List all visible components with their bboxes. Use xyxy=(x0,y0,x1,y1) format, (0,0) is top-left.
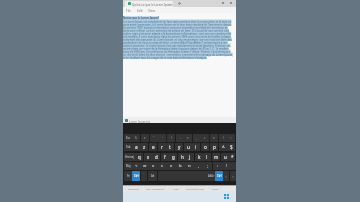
button[interactable]: Alt xyxy=(148,171,157,181)
button[interactable]: Qu'est-ce que le Lorem Ipsum xyxy=(125,1,173,7)
staticText: j xyxy=(189,154,191,160)
button[interactable]: > xyxy=(230,171,236,181)
staticText: e xyxy=(187,136,189,140)
button[interactable]: e xyxy=(141,134,149,142)
button[interactable]: e xyxy=(149,143,157,151)
button[interactable]: f xyxy=(161,153,169,161)
button[interactable]: ) xyxy=(219,134,227,142)
button[interactable]: ; xyxy=(203,162,212,170)
button[interactable]: Ctrl xyxy=(215,171,223,181)
button[interactable]: h xyxy=(178,153,186,161)
button[interactable]: n xyxy=(185,162,194,170)
button[interactable]: New tab xyxy=(177,1,182,6)
button[interactable]: Ver.maj xyxy=(124,153,135,161)
staticText: s xyxy=(147,154,150,160)
button[interactable]: & xyxy=(132,134,140,142)
button[interactable]: File xyxy=(126,9,132,13)
staticText: ' xyxy=(162,136,163,140)
staticText: v xyxy=(170,163,173,169)
button[interactable]: o xyxy=(201,143,209,151)
button[interactable]: < xyxy=(223,171,229,181)
button[interactable]: Tab xyxy=(124,143,132,151)
button[interactable]: u xyxy=(184,143,192,151)
button[interactable]: Edit xyxy=(137,9,143,13)
button[interactable]: Demarrer xyxy=(124,186,143,190)
staticText: Aide xyxy=(173,187,179,190)
staticText: u xyxy=(224,154,227,160)
button[interactable]: w xyxy=(140,162,149,170)
staticText: Maj xyxy=(126,164,131,168)
button[interactable]: " xyxy=(150,134,158,142)
button[interactable]: < xyxy=(133,162,140,170)
staticText: Fn xyxy=(127,174,130,178)
staticText: $ xyxy=(230,144,233,150)
staticText: n xyxy=(188,163,191,169)
button[interactable]: q xyxy=(135,153,143,161)
button[interactable]: i xyxy=(192,143,200,151)
button[interactable]: s xyxy=(144,153,152,161)
button[interactable]: Maj xyxy=(124,162,133,170)
staticText: ; xyxy=(207,163,209,169)
button[interactable]: c xyxy=(201,134,209,142)
button[interactable]: a xyxy=(132,143,140,151)
button[interactable]: j xyxy=(186,153,194,161)
staticText: w xyxy=(143,163,147,169)
button[interactable]: : xyxy=(213,162,222,170)
button[interactable]: ^ xyxy=(219,143,227,151)
button[interactable]: g xyxy=(169,153,177,161)
staticText: a xyxy=(135,144,138,150)
button[interactable]: ( xyxy=(167,134,175,142)
button[interactable]: = xyxy=(227,134,235,142)
button[interactable]: y xyxy=(175,143,183,151)
button[interactable]: Mon ordinateur xyxy=(144,186,167,190)
staticText: Edit xyxy=(137,9,143,13)
button[interactable]: v xyxy=(167,162,176,170)
button[interactable]: l xyxy=(203,153,211,161)
staticText: Notice que le Lorem Ipsum? xyxy=(123,16,160,20)
staticText: a xyxy=(213,136,215,140)
button[interactable]: a xyxy=(210,134,218,142)
button[interactable]: Document sans xyxy=(184,186,207,190)
button[interactable]: , xyxy=(194,162,203,170)
staticText: x xyxy=(152,163,155,169)
button[interactable]: ! xyxy=(222,162,231,170)
button[interactable]: Ctrl xyxy=(132,171,140,181)
staticText: b xyxy=(179,163,182,169)
button[interactable]: * xyxy=(229,153,235,161)
button[interactable]: View xyxy=(148,9,155,13)
button[interactable]: e xyxy=(184,134,192,142)
staticText: : xyxy=(217,163,219,169)
staticText: f xyxy=(164,154,166,160)
button[interactable]: p xyxy=(210,143,218,151)
button[interactable]: c xyxy=(158,162,167,170)
button[interactable]: d xyxy=(152,153,160,161)
staticText: < xyxy=(135,163,138,169)
button[interactable]: Fn xyxy=(124,171,132,181)
button[interactable]: Esc xyxy=(124,134,132,142)
button[interactable]: _ xyxy=(193,134,201,142)
button[interactable]: Offre xyxy=(208,186,223,190)
button[interactable]: m xyxy=(212,153,220,161)
staticText: r xyxy=(161,144,163,150)
button[interactable]: Start xyxy=(224,194,229,199)
button[interactable]: u xyxy=(221,153,229,161)
button[interactable]: x xyxy=(149,162,158,170)
button[interactable]: Aide xyxy=(168,186,183,190)
button[interactable]: r xyxy=(158,143,166,151)
staticText: × xyxy=(168,2,170,7)
button[interactable]: k xyxy=(195,153,203,161)
button[interactable]: $ xyxy=(227,143,235,151)
button[interactable]: z xyxy=(140,143,148,151)
staticText: AltGr xyxy=(208,174,215,178)
button[interactable]: AltGr xyxy=(207,171,215,181)
staticText: > xyxy=(232,174,234,179)
button[interactable]: t xyxy=(166,143,174,151)
button[interactable]: b xyxy=(176,162,185,170)
